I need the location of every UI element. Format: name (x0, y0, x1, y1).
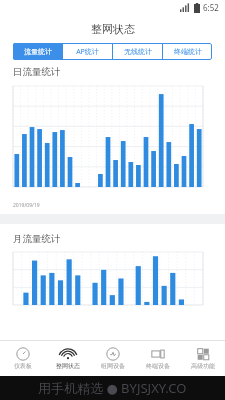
button[interactable]: 无线统计 (113, 43, 162, 60)
staticText: 流量统计 (24, 47, 52, 56)
staticText: 整网状态 (91, 22, 135, 36)
staticText: 仪表板 (14, 362, 32, 370)
staticText: 日流量统计 (13, 66, 61, 78)
staticText: 组网设备 (101, 362, 125, 370)
staticText: 终端统计 (174, 47, 202, 56)
button[interactable]: 高级功能 (180, 340, 225, 376)
button[interactable]: AP统计 (63, 43, 112, 60)
button[interactable]: 组网设备 (90, 340, 135, 376)
button[interactable]: 仪表板 (0, 340, 45, 376)
staticText: 6:52 (203, 2, 219, 13)
button[interactable]: 终端统计 (163, 43, 212, 60)
button[interactable]: 流量统计 (13, 43, 62, 60)
staticText: 整网状态 (56, 362, 80, 370)
staticText: 用手机精选 ● BYJSJXY.CO (38, 379, 187, 397)
staticText: 高级功能 (191, 362, 215, 370)
button[interactable]: 整网状态 (45, 340, 90, 376)
staticText: 月流量统计 (13, 233, 61, 245)
staticText: 终端设备 (146, 362, 170, 370)
button[interactable]: 终端设备 (135, 340, 180, 376)
staticText: 无线统计 (124, 47, 152, 56)
staticText: AP统计 (76, 47, 99, 57)
staticText: 2019/09/19 (13, 202, 40, 209)
